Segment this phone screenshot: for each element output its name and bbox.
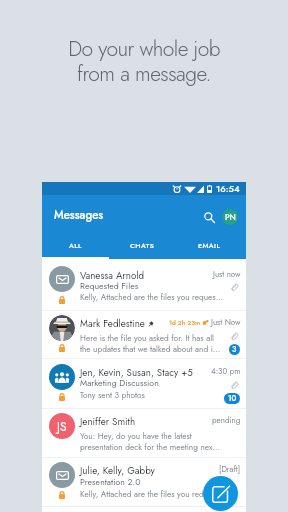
button[interactable]: CHATS xyxy=(109,234,176,259)
button[interactable]: Jen, Kevin, Susan, Stacy +5 xyxy=(42,359,246,408)
staticText: 1d 2h 23m xyxy=(169,318,201,327)
staticText: Mark Fedlestine xyxy=(80,317,145,331)
button[interactable]: Search xyxy=(199,207,219,227)
staticText: Kelly, Attached are the files you reques… xyxy=(80,291,225,303)
staticText: EMAIL xyxy=(198,241,221,251)
staticText: Just Now xyxy=(211,316,241,328)
button[interactable]: Julie, Kelly, Gabby xyxy=(42,458,246,506)
staticText: Messages xyxy=(54,207,104,224)
staticText: 10 xyxy=(228,393,237,404)
staticText: Jen, Kevin, Susan, Stacy +5 xyxy=(80,366,193,380)
staticText: Do your whole job from a message. xyxy=(68,34,220,89)
staticText: Here is the file you asked for. It has a… xyxy=(80,332,225,355)
staticText: 3 xyxy=(232,344,237,355)
staticText: 4:30 pm xyxy=(211,365,241,377)
button[interactable]: Mark Fedlestine xyxy=(42,311,246,358)
staticText: ALL xyxy=(69,241,82,251)
staticText: Kelly, Attached are the files you red… xyxy=(80,488,225,500)
staticText: Julie, Kelly, Gabby xyxy=(80,464,155,478)
button[interactable]: ALL xyxy=(42,234,109,259)
button[interactable]: JS xyxy=(42,409,246,457)
staticText: PN xyxy=(225,211,236,223)
staticText: Requested Files xyxy=(80,280,224,293)
staticText: Marketing Discussion xyxy=(80,377,224,390)
button[interactable]: Vanessa Arnold xyxy=(42,259,246,310)
staticText: JS xyxy=(57,418,67,435)
staticText: Jeniffer Smith xyxy=(80,415,136,429)
staticText: 16:54 xyxy=(216,182,240,195)
staticText: You: Hey, do you have the latest present… xyxy=(80,430,225,453)
staticText: pending xyxy=(212,414,241,426)
staticText: Presentation 2.0 xyxy=(80,476,224,489)
staticText: Vanessa Arnold xyxy=(80,269,145,283)
staticText: CHATS xyxy=(130,241,155,251)
button[interactable]: Compose new message xyxy=(203,476,238,511)
staticText: Tony sent 3 photos xyxy=(80,389,225,401)
staticText: [Draft] xyxy=(219,463,241,475)
button[interactable]: EMAIL xyxy=(176,234,243,259)
staticText: Just now xyxy=(213,268,241,280)
button[interactable]: Account xyxy=(222,209,238,225)
